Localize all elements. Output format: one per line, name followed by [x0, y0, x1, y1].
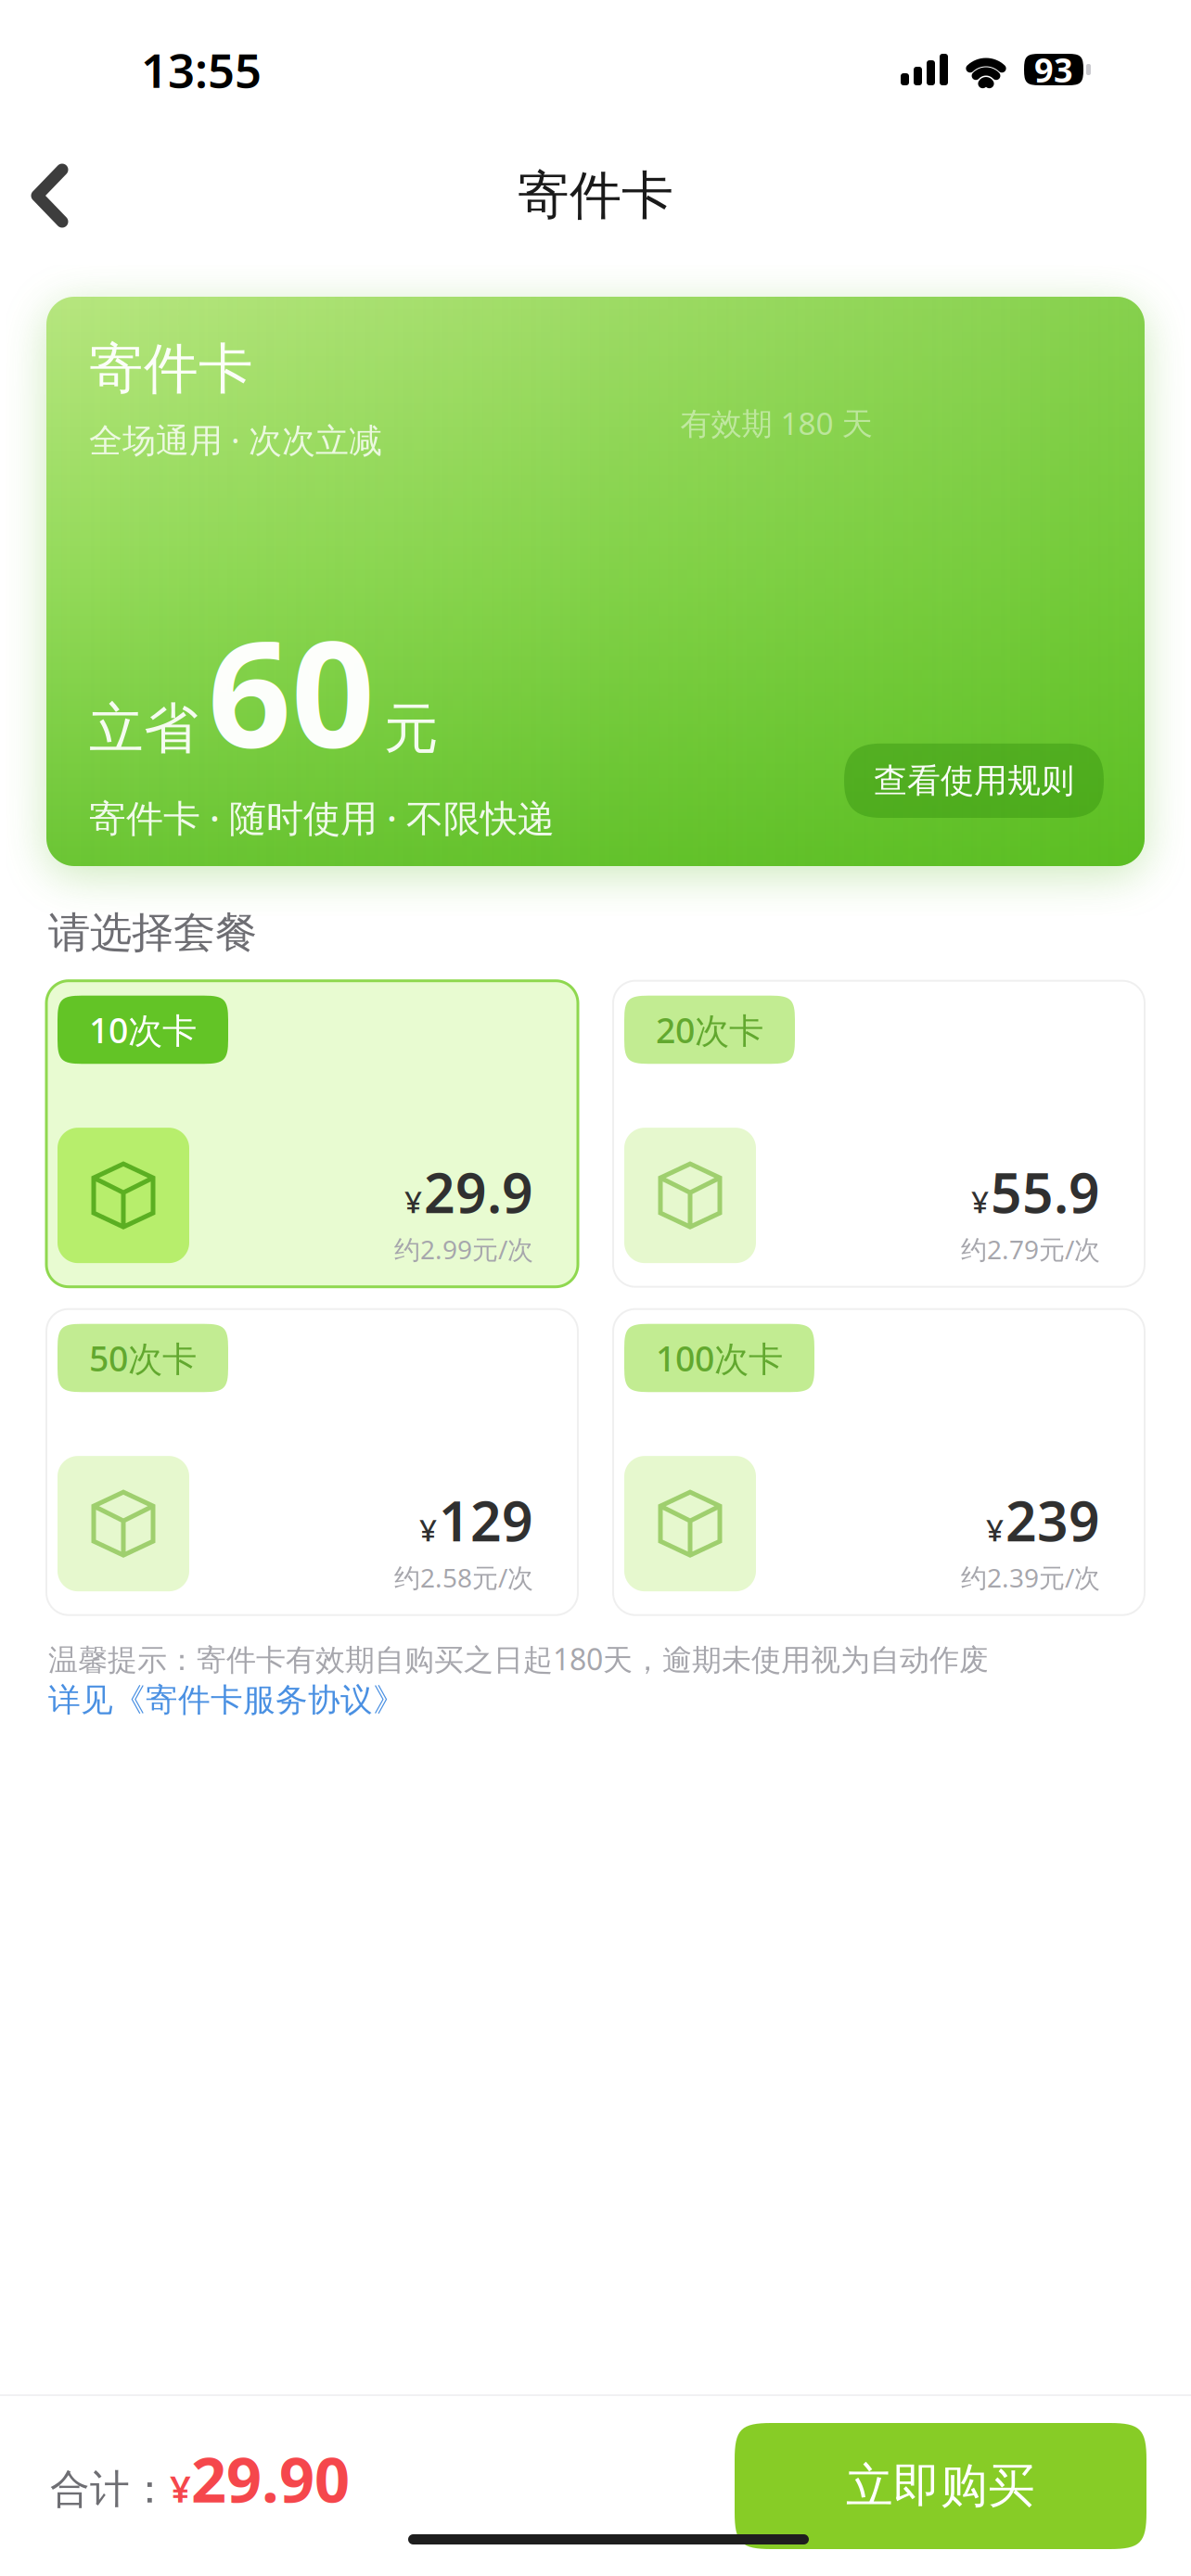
staticText: 有效期 180 天	[680, 402, 872, 443]
staticText: 约2.79元/次	[961, 1232, 1100, 1266]
staticText: ¥	[986, 1509, 1004, 1550]
button[interactable]: 50次卡	[46, 1309, 578, 1615]
staticText: ¥	[971, 1181, 989, 1222]
staticText: 29.9	[424, 1156, 533, 1228]
staticText: 60	[208, 593, 375, 787]
staticText: 元	[384, 695, 439, 762]
button[interactable]: 10次卡	[46, 981, 578, 1287]
staticText: 温馨提示：寄件卡有效期自购买之日起180天，逾期未使用视为自动作废	[48, 1639, 989, 1679]
staticText: 全场通用 · 次次立减	[89, 417, 382, 462]
staticText: 129	[439, 1484, 533, 1556]
staticText: 93	[1034, 47, 1073, 92]
staticText: ¥	[419, 1509, 437, 1550]
staticText: 约2.39元/次	[961, 1560, 1100, 1595]
staticText: 立即购买	[846, 2457, 1035, 2515]
staticText: 100次卡	[656, 1335, 783, 1381]
staticText: 50次卡	[89, 1335, 197, 1381]
staticText: 寄件卡 · 随时使用 · 不限快递	[89, 793, 555, 842]
staticText: 239	[1005, 1484, 1100, 1556]
button[interactable]: 100次卡	[613, 1309, 1145, 1615]
staticText: 寄件卡	[518, 164, 673, 228]
staticText: 立省	[89, 695, 198, 762]
staticText: 合计：	[50, 2465, 170, 2514]
staticText: 55.9	[991, 1156, 1100, 1228]
button[interactable]: Back	[0, 140, 96, 251]
staticText: 20次卡	[656, 1007, 763, 1053]
button[interactable]: 立即购买	[735, 2416, 1146, 2542]
staticText: 请选择套餐	[48, 907, 257, 959]
staticText: 约2.99元/次	[394, 1232, 533, 1266]
button[interactable]: 详见《寄件卡服务协议》	[48, 1680, 1154, 1720]
button[interactable]: 20次卡	[613, 981, 1145, 1287]
staticText: 29.90	[191, 2438, 350, 2520]
staticText: ¥	[170, 2464, 191, 2513]
staticText: 详见《寄件卡服务协议》	[48, 1680, 405, 1720]
staticText: 约2.58元/次	[394, 1560, 533, 1595]
staticText: 13:55	[141, 38, 262, 101]
staticText: ¥	[404, 1181, 422, 1222]
staticText: 10次卡	[89, 1007, 197, 1053]
staticText: 查看使用规则	[874, 760, 1074, 801]
staticText: 寄件卡	[89, 336, 253, 403]
